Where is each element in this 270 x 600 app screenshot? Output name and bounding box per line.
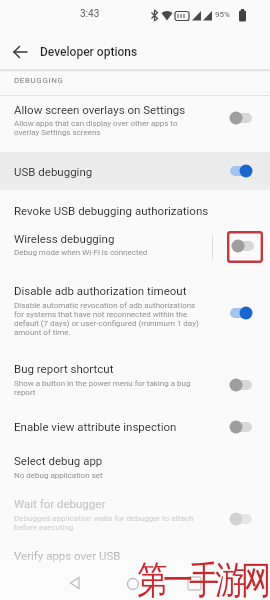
staticText: 95% [215, 10, 230, 19]
staticText: amount of time. [14, 328, 71, 337]
staticText: before executing [14, 523, 74, 532]
staticText: Disable adb authorization timeout [14, 284, 187, 297]
button[interactable]: Select debug app [0, 448, 270, 488]
staticText: Disable automatic revocation of adb auth… [14, 301, 196, 310]
staticText: 3:43 [80, 8, 100, 20]
staticText: No debug application set [14, 471, 103, 480]
staticText: DEBUGGING [14, 76, 64, 85]
button[interactable]: Enable view attribute inspection [0, 412, 270, 448]
button[interactable]: Bug report shortcut [0, 355, 270, 407]
button[interactable]: Revoke USB debugging authorizations [0, 192, 270, 225]
staticText: overlay Settings screens [14, 128, 101, 137]
staticText: Bug report shortcut [14, 362, 114, 375]
staticText: Show a button in the power menu for taki… [14, 379, 191, 388]
staticText: Wireless debugging [14, 232, 115, 245]
button[interactable] [64, 572, 86, 594]
button[interactable]: Wireless debugging [0, 225, 270, 272]
button[interactable]: Allow screen overlays on Settings [0, 96, 270, 150]
staticText: 第一手游网 [139, 556, 269, 600]
button[interactable] [122, 572, 144, 594]
staticText: report [14, 388, 36, 397]
button[interactable] [10, 42, 32, 64]
staticText: Debug mode when Wi-Fi is connected [14, 248, 148, 257]
staticText: Revoke USB debugging authorizations [14, 204, 209, 217]
button[interactable]: Disable adb authorization timeout [0, 272, 270, 354]
button[interactable]: USB debugging [0, 152, 270, 190]
staticText: Allow apps that can display over other a… [14, 119, 178, 128]
staticText: Wait for debugger [14, 497, 106, 510]
staticText: Allow screen overlays on Settings [14, 103, 186, 116]
staticText: Developer options [40, 45, 138, 59]
staticText: Verify apps over USB [14, 549, 121, 562]
staticText: for systems that have not reconnected wi… [14, 310, 188, 319]
staticText: default (7 days) or user-configured (min… [14, 319, 199, 328]
button[interactable]: Wait for debugger [0, 490, 270, 542]
staticText: USB debugging [14, 165, 93, 178]
button[interactable] [184, 574, 204, 594]
staticText: Debugged application waits for debugger … [14, 514, 194, 523]
staticText: Select debug app [14, 454, 103, 467]
staticText: Enable view attribute inspection [14, 420, 177, 433]
